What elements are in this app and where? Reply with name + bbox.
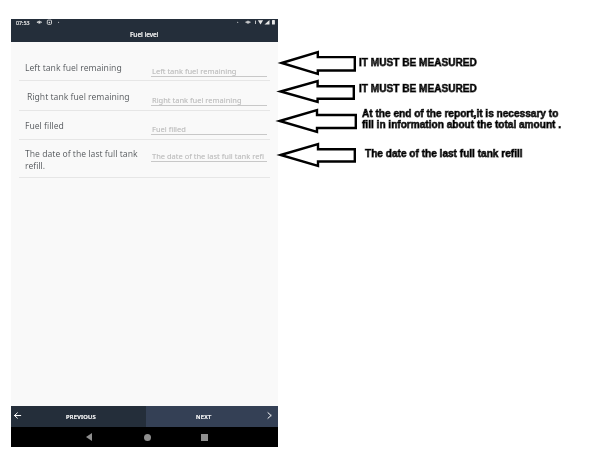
staticText: fill in information about the total amou… [362,119,562,130]
staticText: The date of the last full tank refill [365,148,523,159]
staticText: 07:53 [16,19,30,26]
staticText: Left tank fuel remaining [25,62,145,74]
button[interactable]: Previous [11,406,146,428]
other: Next [266,412,273,419]
staticText: Fuel level [130,30,159,39]
staticText: The date of the last full tank refi [152,151,274,161]
staticText: Fuel filled [25,120,145,132]
button[interactable] [11,52,278,80]
staticText: fill in information about the total amou… [362,119,562,130]
other: Previous [14,412,21,419]
button[interactable]: Back [74,427,104,447]
staticText: IT MUST BE MEASURED [359,57,477,68]
staticText: The date of the last full tank refill. [25,148,145,172]
staticText: At the end of the report,it is necessary… [362,108,559,119]
staticText: PREVIOUS [66,413,97,421]
staticText: IT MUST BE MEASURED [359,83,477,94]
staticText: The date of the last full tank refill [365,148,523,159]
button[interactable]: NEXT [146,406,278,428]
staticText: At the end of the report,it is necessary… [362,108,559,119]
staticText: Fuel filled [152,124,274,134]
button[interactable]: Home [132,427,162,447]
button[interactable] [11,82,278,110]
staticText: Right tank fuel remaining [152,95,274,105]
staticText: NEXT [196,413,212,421]
button[interactable]: Recent apps [189,427,219,447]
staticText: Left tank fuel remaining [152,66,274,76]
staticText: Right tank fuel remaining [27,91,147,103]
button[interactable] [11,149,278,177]
staticText: IT MUST BE MEASURED [359,83,477,94]
staticText: IT MUST BE MEASURED [359,57,477,68]
button[interactable] [11,111,278,139]
